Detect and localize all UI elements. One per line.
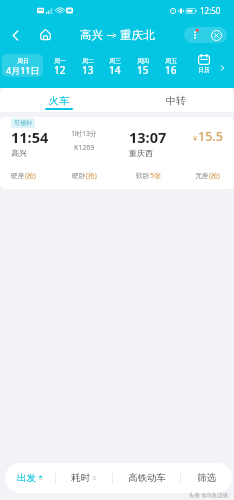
button[interactable]: 周一 [46,54,74,77]
staticText: 筛选 [197,472,216,484]
button[interactable]: 周日 [2,54,43,77]
staticText: 15.5 [198,128,223,145]
staticText: 高兴 [11,148,27,158]
staticText: 软卧 [136,171,150,180]
button[interactable]: 可候补 [0,117,234,189]
staticText: 硬卧 [72,171,86,180]
button[interactable]: Home [34,23,57,46]
button[interactable]: 出发 [5,463,55,493]
button[interactable]: 周五 [157,54,185,77]
staticText: 12 [54,63,66,77]
button[interactable]: 周三 [101,54,129,77]
staticText: 1时13分 [71,129,98,139]
staticText: 火车 [49,94,69,107]
staticText: 可候补 [14,119,32,127]
staticText: 14 [109,63,121,77]
staticText: 硬座 [11,171,25,180]
staticText: 耗时 [71,472,90,484]
staticText: 11:54 [11,127,49,147]
staticText: 高兴 [80,28,103,42]
staticText: 重庆西 [129,148,153,158]
staticText: 13:07 [129,127,167,147]
button[interactable]: Calendar [191,53,217,79]
button[interactable]: Close [205,27,227,43]
staticText: (抢) [86,171,97,180]
staticText: 16 [165,63,177,77]
button[interactable]: 火车 [0,88,117,112]
staticText: 无座 [195,171,209,180]
button[interactable]: Back [4,24,26,46]
staticText: 周日 [17,57,29,65]
staticText: 周四 [137,57,149,65]
button[interactable]: More options [184,27,205,43]
staticText: 日历 [198,66,210,74]
staticText: ¥ [193,133,198,143]
button[interactable]: 高铁动车 [113,463,180,493]
staticText: K1269 [74,143,95,153]
button[interactable]: 耗时 [56,463,112,493]
button[interactable]: 中转 [117,88,234,112]
button[interactable]: 周四 [129,54,157,77]
staticText: 头条 @乌鱼边缘 [189,491,229,499]
button[interactable]: 周二 [74,54,102,77]
staticText: 周三 [109,57,121,65]
staticText: 15 [137,63,149,77]
staticText: (抢) [25,171,36,180]
staticText: 周一 [54,57,66,65]
staticText: 中转 [166,94,186,107]
staticText: 12:50 [200,5,221,16]
staticText: 周五 [165,57,177,65]
staticText: 高铁动车 [128,472,166,484]
staticText: 重庆北 [120,28,155,42]
staticText: 4月11日 [6,64,40,76]
staticText: 5张 [150,171,161,180]
button[interactable]: 筛选 [181,463,232,493]
staticText: 出发 [17,472,36,484]
staticText: 周二 [82,57,94,65]
staticText: 13 [82,63,94,77]
staticText: (抢) [209,171,220,180]
